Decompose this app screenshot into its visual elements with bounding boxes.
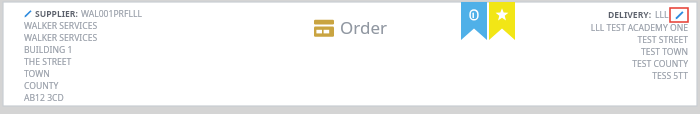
staticText: TOWN: [24, 68, 50, 80]
staticText: WAL001PRFLLL: [81, 8, 142, 20]
staticText: Order: [340, 16, 388, 39]
staticText: LLL: [655, 9, 669, 21]
staticText: WALKER SERVICES: [24, 32, 98, 44]
button[interactable]: Order: [314, 16, 388, 39]
button[interactable]: Favourite: [489, 2, 515, 40]
button[interactable]: Attachments: [461, 2, 487, 40]
staticText: DELIVERY:: [608, 9, 652, 21]
staticText: LLL TEST ACADEMY ONE: [528, 22, 688, 34]
staticText: TEST STREET: [528, 34, 688, 46]
staticText: WALKER SERVICES: [24, 20, 98, 32]
staticText: BUILDING 1: [24, 44, 73, 56]
staticText: THE STREET: [24, 56, 72, 68]
button[interactable]: Edit delivery address: [670, 8, 688, 22]
button[interactable]: SUPPLIER:: [24, 8, 142, 104]
staticText: TEST COUNTY: [528, 58, 688, 70]
staticText: TESS 5TT: [528, 70, 688, 82]
staticText: COUNTY: [24, 80, 59, 92]
staticText: TEST TOWN: [528, 46, 688, 58]
staticText: AB12 3CD: [24, 92, 64, 104]
staticText: SUPPLIER:: [35, 8, 78, 20]
button[interactable]: DELIVERY:: [528, 8, 688, 82]
